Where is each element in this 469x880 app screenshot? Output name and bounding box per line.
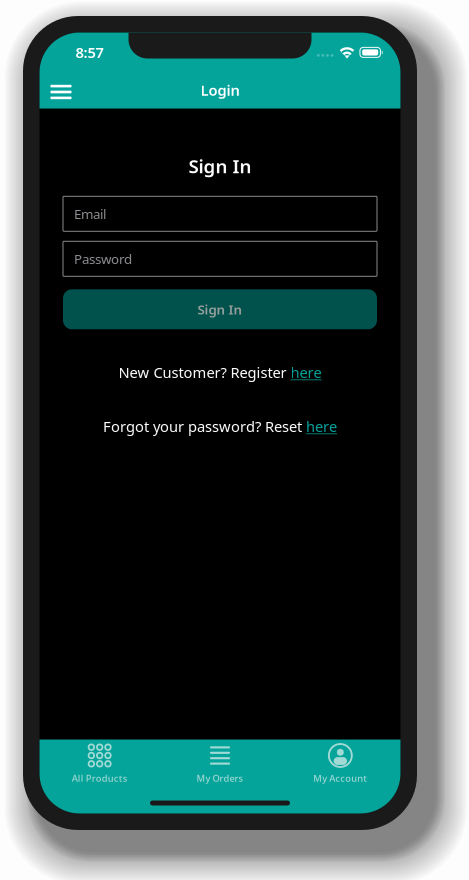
staticText: Forgot your password? Reset (103, 417, 306, 436)
staticText: Login (200, 80, 239, 100)
button[interactable]: My Account (280, 739, 400, 813)
button[interactable]: Email (63, 196, 377, 231)
staticText: My Account (313, 772, 367, 784)
staticText: Email (74, 205, 106, 223)
button[interactable]: Sign In (63, 289, 377, 329)
staticText: My Orders (196, 772, 243, 784)
button[interactable]: My Orders (160, 739, 280, 813)
staticText: 8:57 (75, 43, 103, 62)
staticText: Sign In (188, 153, 251, 178)
button[interactable]: Password (63, 241, 377, 276)
staticText: here (290, 363, 321, 382)
staticText: New Customer? Register (118, 363, 290, 382)
button[interactable]: All Products (39, 739, 160, 813)
button[interactable]: Menu (39, 75, 82, 108)
staticText: Sign In (197, 300, 242, 318)
button[interactable]: Forgot your password? Reset (39, 414, 400, 438)
staticText: here (306, 417, 337, 436)
button[interactable]: New Customer? Register (39, 360, 400, 384)
staticText: All Products (72, 772, 128, 784)
staticText: Password (74, 250, 132, 268)
